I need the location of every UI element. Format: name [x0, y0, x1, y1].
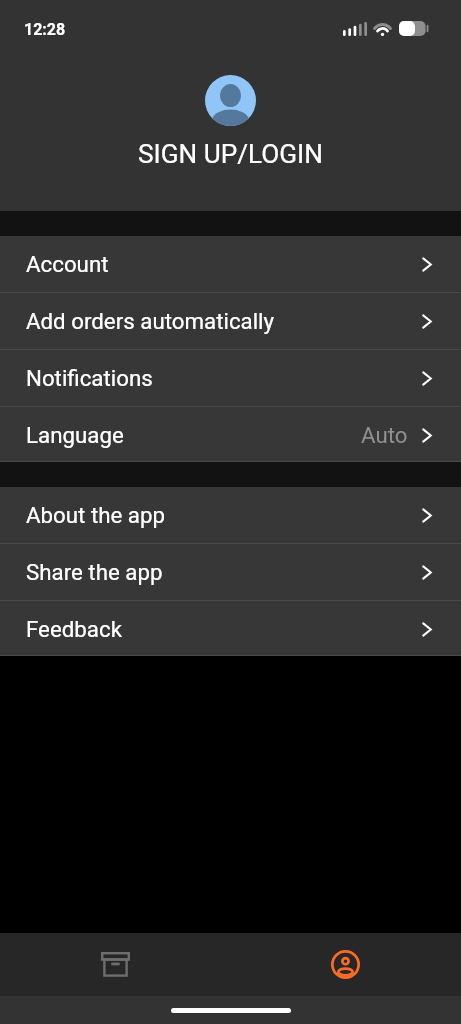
button[interactable]: SIGN UP/LOGIN: [0, 70, 461, 170]
button[interactable]: Notifications: [0, 350, 461, 406]
staticText: Share the app: [26, 559, 163, 585]
staticText: Account: [26, 251, 109, 277]
staticText: 12:28: [24, 20, 66, 39]
button[interactable]: Account: [0, 236, 461, 292]
staticText: Feedback: [26, 616, 122, 642]
button[interactable]: Share the app: [0, 544, 461, 600]
button[interactable]: About the app: [0, 487, 461, 543]
button[interactable]: Account: [230, 933, 461, 996]
button[interactable]: Orders: [0, 933, 230, 996]
button[interactable]: Feedback: [0, 601, 461, 655]
staticText: SIGN UP/LOGIN: [138, 139, 323, 170]
button[interactable]: Add orders automatically: [0, 293, 461, 349]
staticText: Auto: [361, 422, 408, 448]
staticText: Add orders automatically: [26, 308, 275, 334]
staticText: About the app: [26, 502, 165, 528]
button[interactable]: Language: [0, 407, 461, 461]
staticText: Language: [26, 422, 124, 448]
staticText: Notifications: [26, 365, 153, 391]
